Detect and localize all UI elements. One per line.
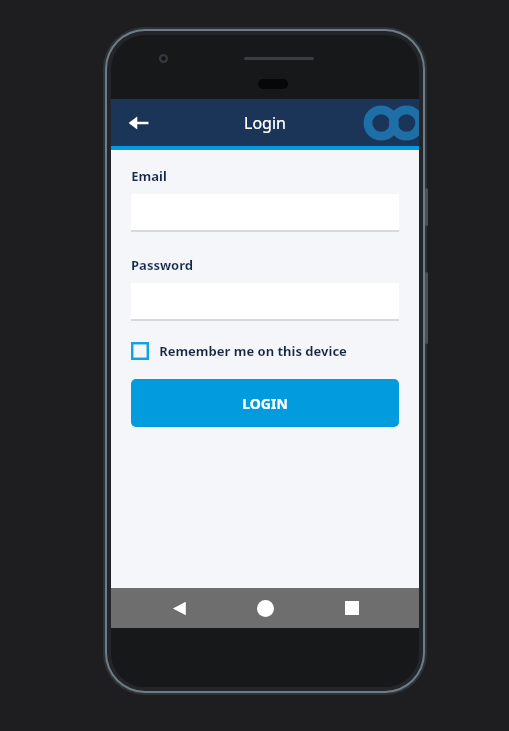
button[interactable] xyxy=(131,194,399,232)
button[interactable]: Home xyxy=(246,589,284,627)
staticText: Email xyxy=(131,167,167,185)
staticText: Remember me on this device xyxy=(159,342,347,360)
button[interactable]: Back xyxy=(160,589,198,627)
button[interactable]: Logo xyxy=(357,101,419,145)
button[interactable]: Remember me on this device xyxy=(131,342,399,360)
button[interactable]: Back xyxy=(119,103,159,143)
staticText: Password xyxy=(131,256,193,274)
button[interactable]: Recent apps xyxy=(333,589,371,627)
staticText: LOGIN xyxy=(242,394,288,413)
button[interactable] xyxy=(131,283,399,321)
staticText: Login xyxy=(244,112,286,134)
button[interactable]: LOGIN xyxy=(131,379,399,427)
